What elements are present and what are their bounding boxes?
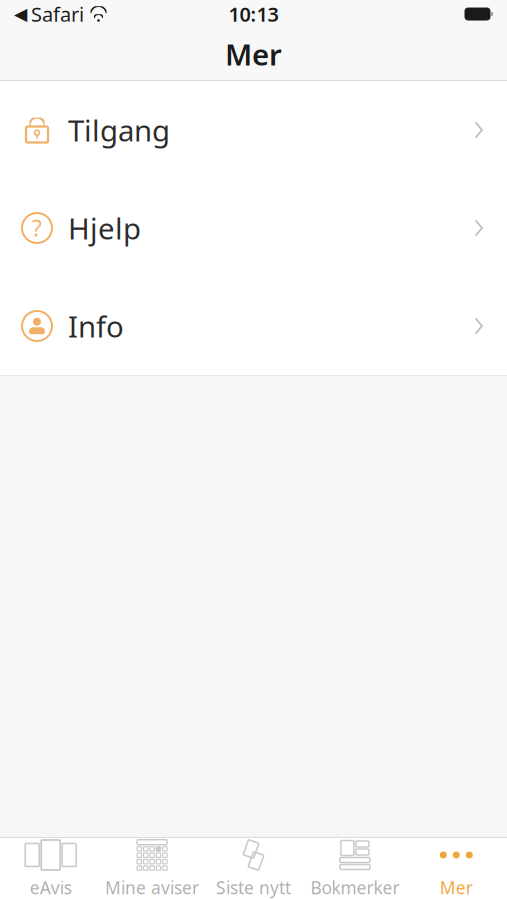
- staticText: ?: [32, 213, 42, 243]
- staticText: Mer: [225, 34, 282, 73]
- staticText: Bokmerker: [310, 876, 399, 899]
- button[interactable]: Mine aviser: [101, 838, 203, 900]
- button[interactable]: Tilgang: [0, 81, 507, 179]
- staticText: Hjelp: [68, 208, 141, 247]
- button[interactable]: Bokmerker: [304, 838, 406, 900]
- staticText: Mine aviser: [105, 876, 199, 899]
- button[interactable]: ?: [0, 179, 507, 277]
- staticText: Mer: [440, 876, 473, 899]
- staticText: Siste nytt: [216, 876, 291, 899]
- staticText: Safari: [31, 1, 84, 27]
- button[interactable]: Siste nytt: [203, 838, 304, 900]
- staticText: Tilgang: [68, 110, 170, 149]
- staticText: 10:13: [228, 1, 278, 27]
- staticText: eAvis: [30, 876, 72, 899]
- staticText: ◀: [14, 4, 27, 24]
- button[interactable]: eAvis: [0, 838, 101, 900]
- button[interactable]: Mer: [406, 838, 507, 900]
- button[interactable]: Info: [0, 277, 507, 375]
- staticText: Info: [68, 306, 124, 345]
